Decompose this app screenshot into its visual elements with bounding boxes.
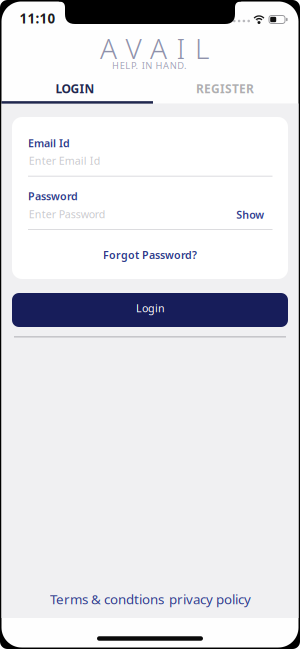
staticText: Email Id <box>28 136 70 150</box>
button[interactable]: Login <box>12 293 288 327</box>
staticText: Enter Password <box>29 207 106 221</box>
button[interactable]: Terms & condtions <box>50 590 164 608</box>
staticText: 11:10 <box>19 9 55 27</box>
staticText: AVAIL <box>100 30 209 67</box>
button[interactable]: Password <box>28 186 273 234</box>
button[interactable]: LOGIN <box>1 76 149 102</box>
button[interactable]: Show <box>230 203 270 227</box>
button[interactable]: Email Id <box>28 132 273 180</box>
staticText: REGISTER <box>196 81 254 96</box>
staticText: Enter Email Id <box>29 153 101 168</box>
staticText: Show <box>236 208 264 222</box>
button[interactable]: privacy policy <box>169 590 251 608</box>
staticText: HELP. IN HAND. <box>112 59 187 71</box>
staticText: privacy policy <box>169 590 251 608</box>
staticText: Terms & condtions <box>50 590 164 608</box>
staticText: Forgot Password? <box>103 248 197 262</box>
staticText: Password <box>28 189 78 203</box>
staticText: LOGIN <box>55 81 94 96</box>
button[interactable]: Forgot Password? <box>95 243 205 267</box>
button[interactable]: REGISTER <box>151 76 299 102</box>
staticText: Login <box>136 301 165 315</box>
